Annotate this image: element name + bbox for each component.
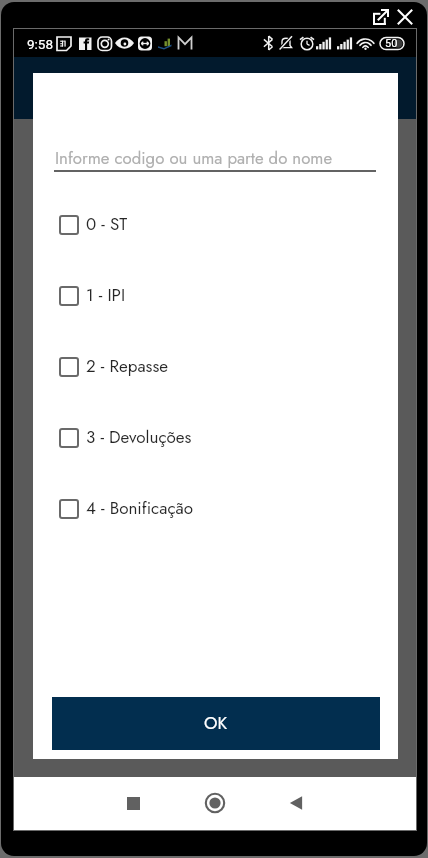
button[interactable]: 3 - Devoluções [33,402,398,473]
button[interactable]: 1 - IPI [33,260,398,331]
staticText: 0 - ST [86,212,128,237]
staticText: OK [204,711,228,736]
staticText: 1 - IPI [86,283,126,308]
button[interactable]: Close [397,9,413,25]
button[interactable]: Home [191,779,239,827]
button[interactable]: 2 - Repasse [33,331,398,402]
button[interactable]: 0 - ST [33,189,398,260]
button[interactable]: Back [272,779,320,827]
button[interactable]: Open in new window [373,9,389,25]
staticText: 9:58 [27,36,54,52]
staticText: 3 - Devoluções [86,425,192,450]
button[interactable]: Recents [109,779,157,827]
staticText: 2 - Repasse [86,354,169,379]
staticText: Informe codigo ou uma parte do nome [55,146,333,170]
staticText: 50 [385,37,398,50]
staticText: 4 - Bonificação [86,496,194,521]
button[interactable]: 4 - Bonificação [33,473,398,544]
button[interactable]: OK [52,697,380,750]
